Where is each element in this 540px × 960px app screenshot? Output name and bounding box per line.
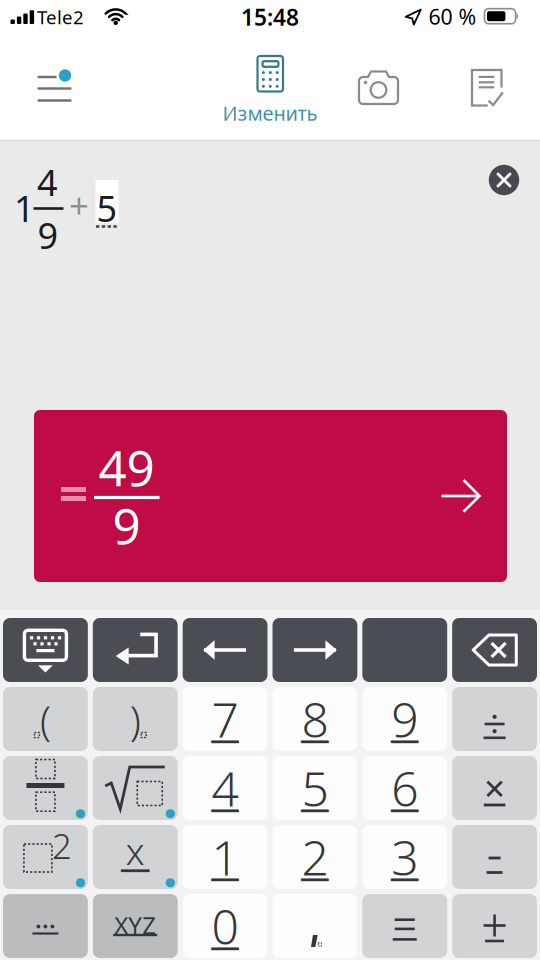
staticText: 0 — [212, 894, 239, 958]
button[interactable]: Clear — [482, 158, 526, 202]
button[interactable]: Menu — [30, 66, 78, 110]
button[interactable]: My tasks — [462, 62, 514, 112]
button[interactable]: Show solution — [34, 410, 507, 582]
button[interactable]: Blank — [362, 618, 447, 682]
button[interactable]: 4 — [183, 756, 267, 820]
button[interactable]: Move right — [272, 618, 357, 682]
button[interactable]: Square root — [93, 756, 178, 820]
button[interactable]: ( — [3, 687, 88, 751]
button[interactable]: Изменить — [215, 50, 325, 126]
staticText: 15:48 — [241, 2, 299, 32]
button[interactable]: 0 — [183, 894, 267, 958]
staticText: 9 — [112, 492, 140, 558]
staticText: 4 — [212, 756, 239, 820]
staticText: + — [69, 182, 89, 228]
staticText: ( — [40, 693, 51, 746]
button[interactable]: Decimal comma — [272, 894, 357, 958]
staticText: 60 % — [428, 2, 476, 31]
button[interactable]: Fraction — [3, 756, 88, 820]
staticText: 9 — [37, 211, 58, 259]
staticText: Изменить — [222, 100, 317, 126]
button[interactable]: XYZ — [93, 894, 178, 958]
staticText: 7 — [212, 687, 239, 751]
button[interactable]: 3 — [362, 825, 447, 889]
button[interactable]: Plus minus — [452, 894, 537, 958]
button[interactable]: Minus — [452, 825, 537, 889]
staticText: 1 — [212, 825, 239, 889]
staticText: Tele2 — [37, 5, 84, 29]
button[interactable]: 8 — [272, 687, 357, 751]
button[interactable]: Multiply — [452, 756, 537, 820]
button[interactable]: 7 — [183, 687, 267, 751]
button[interactable]: Move left — [183, 618, 267, 682]
button[interactable]: Return — [93, 618, 178, 682]
button[interactable]: Variable x — [93, 825, 178, 889]
staticText: 6 — [391, 756, 418, 820]
staticText: 1 — [14, 184, 35, 232]
button[interactable]: ) — [93, 687, 178, 751]
button[interactable]: Equals — [362, 894, 447, 958]
button[interactable]: 5 — [272, 756, 357, 820]
staticText: 8 — [301, 687, 328, 751]
button[interactable]: Delete — [452, 618, 537, 682]
button[interactable]: More — [3, 894, 88, 958]
staticText: 5 — [96, 184, 117, 232]
staticText: 4 — [37, 158, 58, 206]
staticText: x — [126, 826, 145, 875]
button[interactable]: Hide keyboard — [3, 618, 88, 682]
button[interactable]: 9 — [362, 687, 447, 751]
button[interactable]: Camera — [350, 63, 406, 113]
staticText: XYZ — [114, 909, 156, 941]
staticText: 49 — [98, 434, 154, 500]
button[interactable]: 6 — [362, 756, 447, 820]
staticText: 9 — [391, 687, 418, 751]
staticText: 5 — [301, 756, 328, 820]
button[interactable]: 2 — [272, 825, 357, 889]
button[interactable]: Divide — [452, 687, 537, 751]
button[interactable]: Square — [3, 825, 88, 889]
staticText: 2 — [301, 825, 328, 889]
staticText: 2 — [52, 822, 72, 868]
staticText: ) — [130, 693, 141, 746]
button[interactable]: 1 — [183, 825, 267, 889]
staticText: 3 — [391, 825, 418, 889]
